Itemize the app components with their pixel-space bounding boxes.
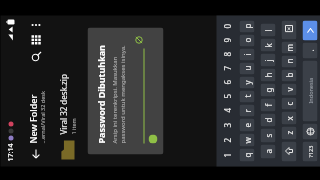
button[interactable]: 8 bbox=[216, 47, 236, 61]
button[interactable]: 3 bbox=[216, 117, 236, 132]
staticText: u bbox=[241, 65, 252, 70]
staticText: y bbox=[241, 79, 252, 84]
button[interactable]: Grid view bbox=[27, 31, 44, 48]
button[interactable]: w bbox=[239, 133, 254, 146]
button[interactable]: u bbox=[239, 62, 254, 74]
button[interactable]: l bbox=[260, 23, 275, 36]
button[interactable]: 2 bbox=[216, 132, 236, 147]
button[interactable]: f bbox=[260, 98, 275, 111]
staticText: e bbox=[241, 122, 252, 127]
staticText: r bbox=[241, 108, 252, 112]
button[interactable]: Search bbox=[27, 48, 44, 65]
button[interactable]: Viral 32 desk.zip bbox=[50, 15, 82, 166]
staticText: ...ernal/Viral 32 desk bbox=[38, 90, 45, 143]
staticText: o bbox=[241, 37, 252, 42]
staticText: New Folder bbox=[26, 94, 38, 143]
staticText: 2 bbox=[221, 137, 232, 142]
staticText: 1 bbox=[221, 152, 232, 157]
button[interactable]: More options bbox=[29, 18, 42, 31]
staticText: 0 bbox=[221, 23, 232, 28]
staticText: Arsip ini terenkripsi. Masukkan password… bbox=[110, 34, 126, 143]
button[interactable]: o bbox=[239, 34, 254, 46]
button[interactable]: Change language bbox=[302, 123, 317, 139]
button[interactable]: 0 bbox=[216, 19, 236, 33]
button[interactable]: p bbox=[239, 20, 254, 32]
button[interactable]: x bbox=[281, 111, 296, 124]
button[interactable]: Back bbox=[27, 146, 43, 162]
staticText: 9 bbox=[221, 37, 232, 42]
button[interactable]: k bbox=[260, 38, 275, 51]
staticText: t bbox=[241, 94, 252, 97]
staticText: d bbox=[262, 117, 273, 122]
staticText: a bbox=[262, 148, 273, 153]
button[interactable]: t bbox=[239, 90, 254, 102]
staticText: k bbox=[262, 42, 273, 47]
staticText: 5 bbox=[221, 93, 232, 98]
button[interactable]: 4 bbox=[216, 103, 236, 117]
staticText: 7 bbox=[221, 65, 232, 70]
button[interactable]: . bbox=[302, 42, 317, 58]
button[interactable]: 7 bbox=[216, 61, 236, 75]
button[interactable]: Backspace bbox=[281, 20, 296, 39]
button[interactable]: b bbox=[281, 69, 296, 81]
staticText: Indonesia bbox=[306, 77, 313, 103]
button[interactable]: a bbox=[260, 144, 275, 158]
button[interactable]: e bbox=[239, 118, 254, 131]
staticText: 1 item bbox=[69, 117, 76, 134]
button[interactable]: Indonesia bbox=[302, 60, 317, 121]
staticText: Viral 32 desk.zip bbox=[57, 73, 68, 134]
staticText: n bbox=[283, 58, 294, 63]
staticText: ?123 bbox=[306, 145, 313, 157]
staticText: w bbox=[241, 136, 252, 143]
button[interactable]: r bbox=[239, 104, 254, 116]
staticText: b bbox=[283, 72, 294, 77]
staticText: x bbox=[283, 115, 294, 120]
staticText: h bbox=[262, 72, 273, 77]
button[interactable]: y bbox=[239, 76, 254, 88]
staticText: . bbox=[304, 48, 315, 51]
staticText: 17:14 bbox=[5, 143, 15, 161]
button[interactable]: ?123 bbox=[302, 141, 317, 161]
staticText: 4 bbox=[221, 107, 232, 112]
button[interactable]: m bbox=[281, 41, 296, 53]
staticText: 6 bbox=[221, 79, 232, 84]
button[interactable]: q bbox=[239, 148, 254, 161]
staticText: m bbox=[283, 43, 294, 51]
button[interactable]: 5 bbox=[216, 89, 236, 103]
staticText: s bbox=[262, 133, 273, 137]
staticText: 8 bbox=[221, 51, 232, 56]
button[interactable]: g bbox=[260, 83, 275, 96]
button[interactable]: 1 bbox=[216, 147, 236, 162]
staticText: c bbox=[283, 101, 294, 105]
button[interactable]: i bbox=[239, 48, 254, 60]
staticText: z bbox=[283, 130, 294, 134]
button[interactable]: s bbox=[260, 128, 275, 142]
staticText: p bbox=[241, 23, 252, 28]
staticText: i bbox=[241, 52, 252, 55]
button[interactable]: 9 bbox=[216, 33, 236, 47]
button[interactable]: z bbox=[281, 126, 296, 139]
button[interactable]: 6 bbox=[216, 75, 236, 89]
staticText: g bbox=[262, 87, 273, 92]
button[interactable]: Remember password bbox=[148, 134, 157, 143]
button[interactable]: Enter bbox=[302, 20, 317, 40]
staticText: f bbox=[262, 103, 273, 106]
staticText: v bbox=[283, 86, 294, 91]
staticText: Password Dibutuhkan bbox=[94, 44, 106, 143]
button[interactable]: Shift bbox=[281, 141, 296, 161]
button[interactable]: n bbox=[281, 55, 296, 67]
button[interactable]: d bbox=[260, 113, 275, 126]
button[interactable]: v bbox=[281, 83, 296, 95]
staticText: q bbox=[241, 152, 252, 157]
button[interactable]: j bbox=[260, 53, 275, 66]
button[interactable]: c bbox=[281, 97, 296, 109]
staticText: 3 bbox=[221, 122, 232, 127]
button[interactable]: Show password bbox=[133, 34, 144, 45]
button[interactable]: h bbox=[260, 68, 275, 81]
staticText: l bbox=[262, 28, 273, 31]
staticText: j bbox=[262, 58, 273, 61]
